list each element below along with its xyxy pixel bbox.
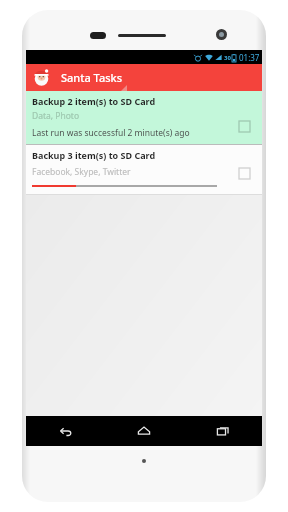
staticText: 01:37	[239, 52, 260, 63]
button[interactable]: Backup 2 item(s) to SD Card	[26, 91, 262, 144]
staticText: Backup 2 item(s) to SD Card	[32, 95, 156, 107]
button[interactable]: Back	[26, 416, 104, 446]
staticText: 30	[224, 54, 231, 62]
button[interactable]: Toggle task	[235, 164, 253, 182]
button[interactable]: Santa Tasks	[26, 64, 262, 91]
staticText: Backup 3 item(s) to SD Card	[32, 149, 156, 161]
staticText: Facebook, Skype, Twitter	[32, 166, 131, 178]
button[interactable]: Toggle task	[235, 117, 253, 135]
staticText: Last run was successful 2 minute(s) ago	[32, 127, 190, 139]
staticText: Data, Photo	[32, 110, 80, 122]
button[interactable]: Backup 3 item(s) to SD Card	[26, 145, 262, 194]
button[interactable]: Home	[104, 416, 183, 446]
button[interactable]: Recent apps	[183, 416, 262, 446]
staticText: Santa Tasks	[61, 70, 123, 85]
